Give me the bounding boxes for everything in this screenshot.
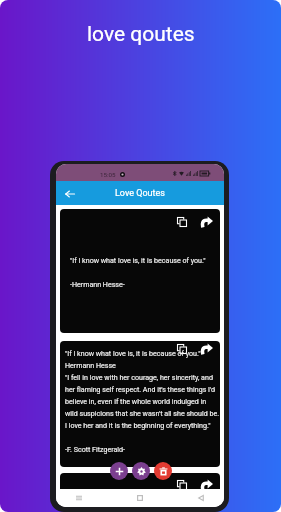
staticText: 15:05 [100,171,116,178]
button[interactable]: Add [110,462,128,480]
button[interactable]: Back [196,493,206,503]
button[interactable]: Delete [154,462,172,480]
staticText: love qoutes [87,22,195,47]
staticText: "If I know what love is, it is because o… [70,256,206,288]
button[interactable]: Copy [60,473,220,493]
button[interactable]: Copy [176,479,187,490]
staticText: Love Qoutes [115,188,165,199]
button[interactable]: Copy [176,343,187,354]
button[interactable]: Copy [176,216,187,227]
staticText: "If I know what love is, it is because o… [65,349,220,453]
button[interactable]: Copy [60,209,220,333]
button[interactable]: Copy [60,341,220,467]
button[interactable]: Back [63,187,76,200]
button[interactable]: Recents [74,493,84,503]
button[interactable]: Share [200,215,213,228]
button[interactable]: Share [200,342,213,355]
button[interactable]: Share [200,478,213,491]
button[interactable]: Home [135,493,145,503]
button[interactable]: Settings [132,462,150,480]
